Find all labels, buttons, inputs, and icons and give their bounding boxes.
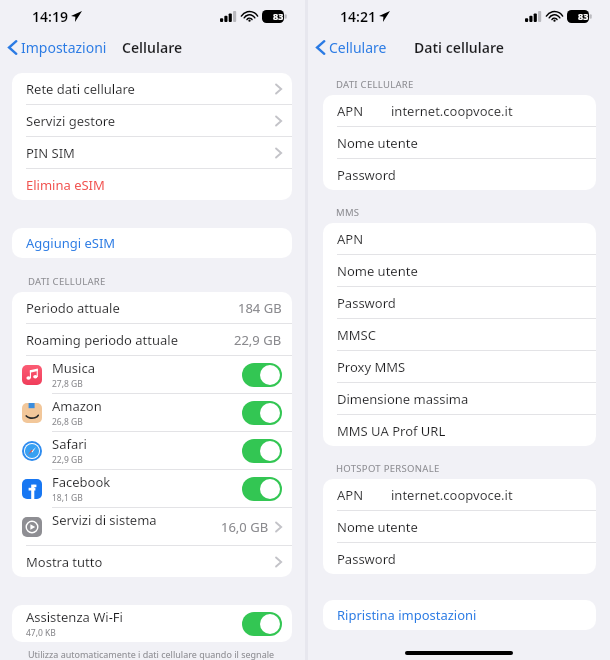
button[interactable]: Roaming periodo attuale [12, 324, 292, 355]
button[interactable]: Periodo attuale [12, 292, 292, 323]
staticText: Musica [52, 359, 95, 377]
button[interactable]: Servizi gestore [12, 105, 292, 136]
button[interactable]: Attiva/disattiva [242, 612, 282, 636]
button[interactable]: Password [323, 287, 596, 318]
button[interactable]: Rete dati cellulare [12, 73, 292, 104]
staticText: DATI CELLULARE [28, 275, 106, 288]
staticText: 26,8 GB [52, 416, 83, 428]
button[interactable]: Nome utente [323, 511, 596, 542]
staticText: 16,0 GB [221, 518, 269, 536]
staticText: Rete dati cellulare [26, 80, 135, 98]
button[interactable]: Dimensione massima [323, 383, 596, 414]
staticText: 83 [578, 10, 589, 22]
staticText: Aggiungi eSIM [26, 234, 116, 252]
button[interactable]: Musica [12, 356, 292, 393]
staticText: APN [337, 102, 364, 120]
button[interactable]: Attiva/disattiva [242, 363, 282, 387]
staticText: 22,9 GB [234, 331, 282, 349]
staticText: Elimina eSIM [26, 176, 105, 194]
staticText: PIN SIM [26, 144, 75, 162]
button[interactable]: Safari [12, 432, 292, 469]
staticText: Cellulare [329, 38, 387, 57]
button[interactable]: Proxy MMS [323, 351, 596, 382]
button[interactable]: Mostra tutto [12, 546, 292, 577]
staticText: Assistenza Wi-Fi [26, 608, 123, 626]
staticText: Dati cellulare [414, 38, 504, 57]
staticText: 22,9 GB [52, 454, 83, 466]
staticText: Amazon [52, 397, 102, 415]
staticText: Safari [52, 435, 87, 453]
button[interactable]: Facebook [12, 470, 292, 507]
button[interactable]: Aggiungi eSIM [12, 228, 292, 258]
staticText: Password [337, 166, 396, 184]
button[interactable]: MMS UA Prof URL [323, 415, 596, 446]
staticText: internet.coopvoce.it [391, 102, 513, 120]
button[interactable]: Amazon [12, 394, 292, 431]
button[interactable]: APN [323, 479, 596, 510]
staticText: MMS [336, 206, 360, 219]
staticText: Impostazioni [21, 38, 107, 57]
staticText: Periodo attuale [26, 299, 120, 317]
staticText: 14:19 [32, 7, 68, 26]
button[interactable]: Ripristina impostazioni [323, 600, 596, 630]
staticText: DATI CELLULARE [336, 78, 414, 91]
button[interactable]: Elimina eSIM [12, 169, 292, 200]
staticText: 83 [273, 10, 284, 22]
staticText: Nome utente [337, 518, 418, 536]
staticText: Nome utente [337, 262, 418, 280]
button[interactable]: Password [323, 159, 596, 190]
staticText: Password [337, 550, 396, 568]
staticText: HOTSPOT PERSONALE [336, 462, 440, 475]
button[interactable]: Attiva/disattiva [242, 477, 282, 501]
staticText: Servizi gestore [26, 112, 116, 130]
staticText: 27,8 GB [52, 378, 83, 390]
button[interactable]: Nome utente [323, 255, 596, 286]
staticText: Roaming periodo attuale [26, 331, 179, 349]
staticText: Dimensione massima [337, 390, 469, 408]
staticText: 14:21 [340, 7, 376, 26]
staticText: APN [337, 486, 364, 504]
staticText: Mostra tutto [26, 553, 103, 571]
staticText: MMSC [337, 326, 376, 344]
button[interactable]: APN [323, 95, 596, 126]
staticText: 47,0 KB [26, 627, 56, 639]
button[interactable]: Servizi di sistema [12, 508, 292, 545]
staticText: internet.coopvoce.it [391, 486, 513, 504]
button[interactable]: Impostazioni [0, 35, 113, 60]
staticText: 184 GB [238, 299, 282, 317]
staticText: Servizi di sistema [52, 511, 157, 529]
staticText: Cellulare [122, 38, 183, 57]
button[interactable]: Assistenza Wi-Fi [12, 605, 292, 642]
button[interactable]: Password [323, 543, 596, 574]
button[interactable]: Cellulare [308, 35, 393, 60]
staticText: APN [337, 230, 364, 248]
staticText: Ripristina impostazioni [337, 606, 477, 624]
button[interactable]: PIN SIM [12, 137, 292, 168]
button[interactable]: Attiva/disattiva [242, 439, 282, 463]
staticText: Proxy MMS [337, 358, 406, 376]
staticText: Password [337, 294, 396, 312]
staticText: Nome utente [337, 134, 418, 152]
staticText: MMS UA Prof URL [337, 422, 446, 440]
button[interactable]: MMSC [323, 319, 596, 350]
staticText: Facebook [52, 473, 111, 491]
staticText: Utilizza automaticamente i dati cellular… [28, 648, 281, 660]
button[interactable]: Attiva/disattiva [242, 401, 282, 425]
button[interactable]: APN [323, 223, 596, 254]
button[interactable]: Nome utente [323, 127, 596, 158]
staticText: 18,1 GB [52, 492, 83, 504]
